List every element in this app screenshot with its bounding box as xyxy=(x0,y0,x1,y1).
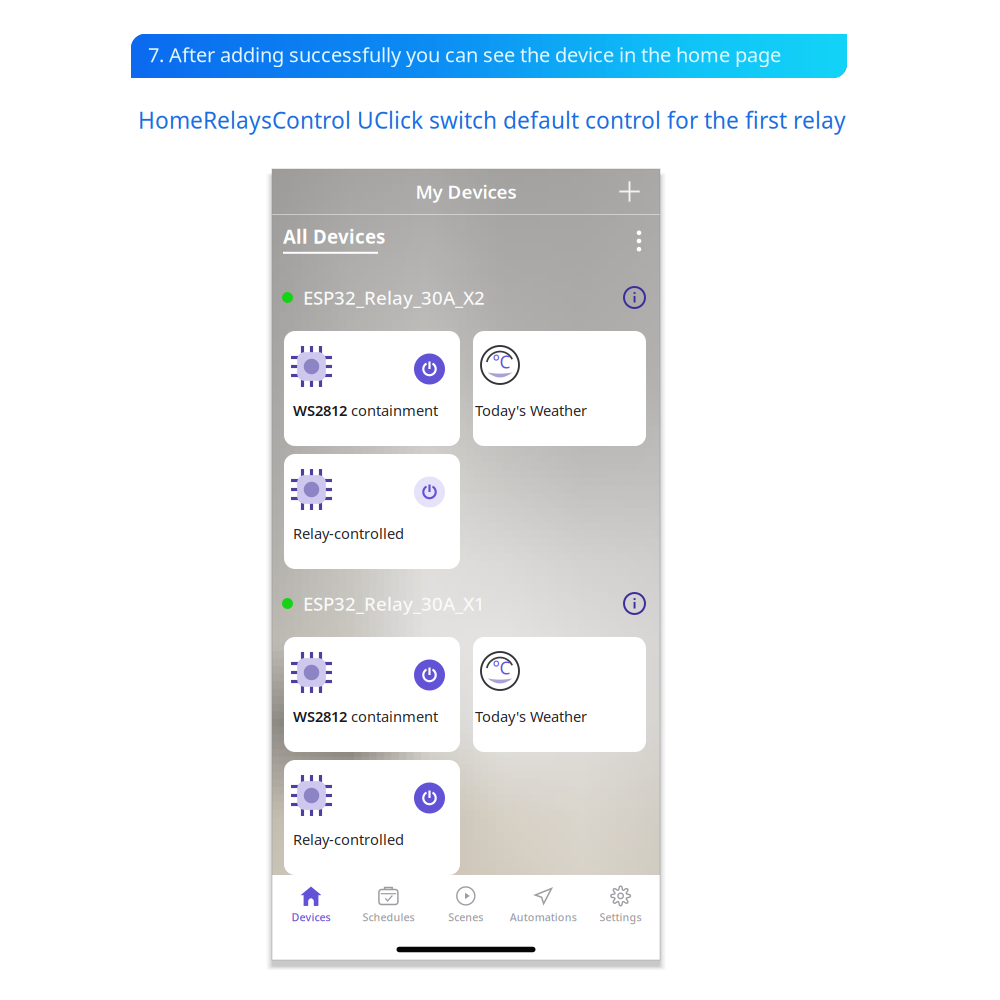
staticText: Relay-controlled xyxy=(293,523,404,543)
staticText: WS2812 xyxy=(293,706,347,726)
staticText: My Devices xyxy=(415,179,516,204)
button[interactable]: Relay-controlled xyxy=(284,454,460,569)
button[interactable]: More options xyxy=(624,223,654,259)
staticText xyxy=(347,400,351,420)
staticText xyxy=(347,706,351,726)
staticText: All Devices xyxy=(283,224,385,249)
button[interactable]: Schedules xyxy=(350,884,427,926)
staticText: containment xyxy=(351,400,438,420)
staticText: containment xyxy=(351,706,438,726)
staticText: Settings xyxy=(600,910,642,924)
staticText: °C xyxy=(492,656,510,679)
staticText: Relay-controlled xyxy=(293,829,404,849)
staticText: 7. After adding successfully you can see… xyxy=(148,41,781,68)
button[interactable]: °C xyxy=(473,331,646,446)
staticText: WS2812 xyxy=(293,400,347,420)
staticText: Automations xyxy=(510,910,577,924)
staticText: ESP32_Relay_30A_X1 xyxy=(303,591,485,616)
button[interactable]: Device info xyxy=(622,591,647,616)
button[interactable]: Settings xyxy=(582,884,659,926)
button[interactable]: WS2812 xyxy=(284,637,460,752)
button[interactable]: Automations xyxy=(504,884,582,926)
staticText: ESP32_Relay_30A_X2 xyxy=(303,285,485,310)
button[interactable]: Relay-controlled xyxy=(284,760,460,875)
button[interactable]: Devices xyxy=(272,884,350,926)
staticText: Today's Weather xyxy=(475,706,587,726)
staticText: Schedules xyxy=(362,910,414,924)
button[interactable]: Scenes xyxy=(427,884,504,926)
button[interactable]: WS2812 xyxy=(284,331,460,446)
staticText: Devices xyxy=(291,910,330,924)
button[interactable]: Add device xyxy=(609,171,649,211)
staticText: Scenes xyxy=(448,910,483,924)
button[interactable]: °C xyxy=(473,637,646,752)
staticText: Today's Weather xyxy=(475,400,587,420)
button[interactable]: All Devices xyxy=(283,224,393,258)
staticText: °C xyxy=(492,350,510,373)
staticText: HomeRelaysControl UClick switch default … xyxy=(138,105,846,135)
button[interactable]: Device info xyxy=(622,285,647,310)
